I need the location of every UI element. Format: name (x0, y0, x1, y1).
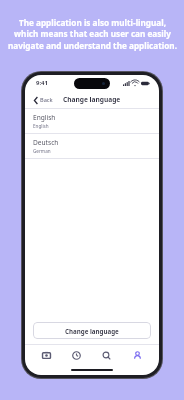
button[interactable]: Search (91, 345, 122, 365)
button[interactable]: History (61, 345, 91, 365)
staticText: Change language (65, 327, 119, 335)
button[interactable]: Gallery (31, 345, 61, 365)
staticText: German (33, 148, 51, 154)
staticText: 9:41 (36, 79, 48, 87)
button[interactable]: English (25, 109, 159, 133)
staticText: Change language (63, 95, 121, 104)
staticText: English (33, 113, 56, 122)
button[interactable]: Deutsch (25, 134, 159, 158)
staticText: Deutsch (33, 138, 59, 147)
button[interactable]: Profile (122, 345, 153, 365)
staticText: Back (40, 96, 53, 104)
staticText: English (33, 123, 49, 129)
staticText: The application is also multi-lingual, w… (8, 17, 177, 52)
button[interactable]: Change language (33, 322, 151, 339)
button[interactable]: Back (32, 94, 55, 106)
